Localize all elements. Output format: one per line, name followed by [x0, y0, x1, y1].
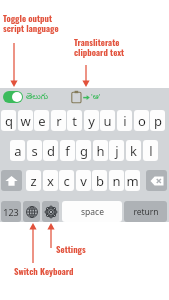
- staticText: v: [80, 172, 87, 190]
- staticText: u: [103, 112, 112, 130]
- staticText: w: [20, 112, 31, 130]
- staticText: Transliterate clipboard text: [74, 36, 125, 58]
- button[interactable]: h: [93, 140, 108, 161]
- button[interactable]: Shift: [1, 170, 22, 191]
- staticText: Toggle output script language: [3, 12, 59, 34]
- button[interactable]: Toggle output script language: [3, 91, 23, 103]
- button[interactable]: v: [76, 170, 91, 191]
- button[interactable]: z: [26, 170, 41, 191]
- button[interactable]: w: [18, 110, 33, 131]
- button[interactable]: e: [34, 110, 49, 131]
- staticText: h: [96, 142, 105, 160]
- staticText: q: [5, 112, 13, 130]
- staticText: l: [149, 142, 153, 160]
- button[interactable]: return: [124, 201, 167, 222]
- staticText: t: [72, 112, 77, 130]
- button[interactable]: f: [60, 140, 75, 161]
- button[interactable]: d: [43, 140, 58, 161]
- button[interactable]: k: [126, 140, 141, 161]
- staticText: j: [115, 142, 119, 160]
- staticText: Settings: [56, 243, 86, 256]
- staticText: s: [31, 142, 38, 160]
- button[interactable]: p: [150, 110, 165, 131]
- staticText: z: [30, 172, 37, 190]
- staticText: return: [133, 206, 159, 218]
- button[interactable]: Settings: [42, 201, 59, 222]
- button[interactable]: i: [117, 110, 132, 131]
- staticText: 123: [3, 206, 19, 218]
- staticText: తెలుగు: [26, 92, 49, 103]
- staticText: a: [14, 142, 22, 160]
- staticText: k: [130, 142, 137, 160]
- staticText: p: [154, 112, 162, 130]
- staticText: space: [81, 206, 104, 218]
- staticText: y: [88, 112, 95, 130]
- staticText: d: [47, 142, 55, 160]
- staticText: 'ఆ': [91, 91, 101, 103]
- staticText: g: [80, 142, 88, 160]
- button[interactable]: n: [109, 170, 124, 191]
- staticText: n: [112, 172, 121, 190]
- staticText: i: [123, 112, 127, 130]
- staticText: Switch Keyboard: [14, 265, 74, 278]
- staticText: o: [138, 112, 146, 130]
- button[interactable]: Backspace: [146, 170, 167, 191]
- button[interactable]: g: [76, 140, 91, 161]
- button[interactable]: x: [43, 170, 58, 191]
- staticText: e: [38, 112, 46, 130]
- button[interactable]: q: [1, 110, 16, 131]
- staticText: m: [126, 172, 139, 190]
- staticText: x: [47, 172, 54, 190]
- button[interactable]: o: [134, 110, 149, 131]
- staticText: f: [65, 142, 70, 160]
- button[interactable]: u: [100, 110, 115, 131]
- button[interactable]: s: [27, 140, 42, 161]
- button[interactable]: r: [51, 110, 66, 131]
- button[interactable]: a: [10, 140, 25, 161]
- staticText: b: [96, 172, 104, 190]
- button[interactable]: t: [67, 110, 82, 131]
- button[interactable]: b: [92, 170, 107, 191]
- button[interactable]: m: [125, 170, 140, 191]
- button[interactable]: c: [59, 170, 74, 191]
- button[interactable]: space: [62, 201, 122, 222]
- button[interactable]: 123: [1, 201, 21, 222]
- button[interactable]: Switch keyboard: [23, 201, 40, 222]
- staticText: r: [56, 112, 62, 130]
- staticText: c: [63, 172, 70, 190]
- button[interactable]: y: [84, 110, 99, 131]
- button[interactable]: j: [109, 140, 124, 161]
- button[interactable]: l: [143, 140, 158, 161]
- button[interactable]: Transliterate clipboard text: [71, 90, 102, 105]
